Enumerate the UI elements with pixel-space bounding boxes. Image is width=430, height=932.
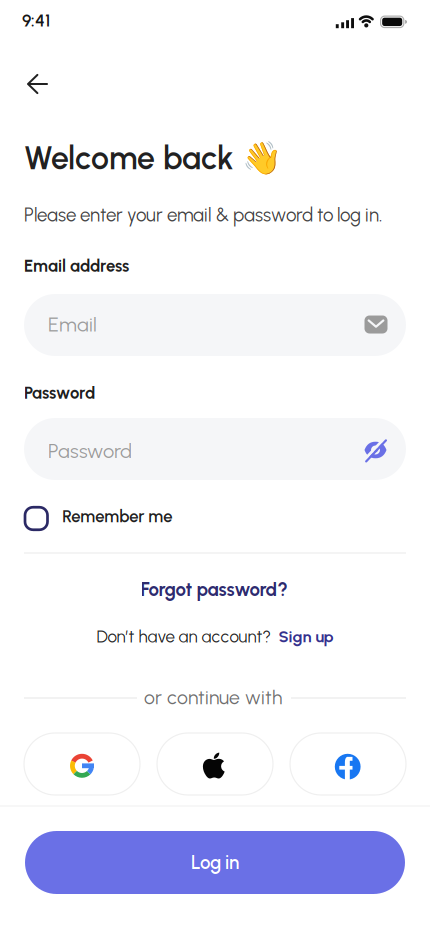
staticText: Password (24, 383, 95, 403)
button[interactable]: Continue with Google (24, 733, 140, 795)
button[interactable]: Log in (25, 831, 405, 894)
button[interactable]: Continue with Facebook (290, 733, 406, 795)
button[interactable]: Back (22, 72, 52, 96)
staticText: Sign up (278, 627, 333, 646)
staticText: Welcome back 👋 (24, 139, 282, 177)
staticText: Remember me (62, 506, 172, 526)
staticText: 9:41 (22, 10, 50, 31)
button[interactable]: Continue with Apple (157, 733, 273, 795)
button[interactable]: Sign up (278, 627, 333, 646)
button[interactable]: Show password (363, 439, 387, 460)
staticText: Email (48, 312, 97, 336)
button[interactable]: Remember me (24, 506, 172, 531)
staticText: Please enter your email & password to lo… (24, 204, 382, 226)
staticText: Password (48, 439, 132, 463)
staticText: Don’t have an account? (96, 626, 270, 647)
staticText: Email address (24, 256, 129, 276)
staticText: Log in (191, 851, 239, 874)
staticText: Forgot password? (140, 578, 287, 601)
button[interactable]: Forgot password? (140, 578, 287, 601)
staticText: or continue with (144, 686, 282, 709)
